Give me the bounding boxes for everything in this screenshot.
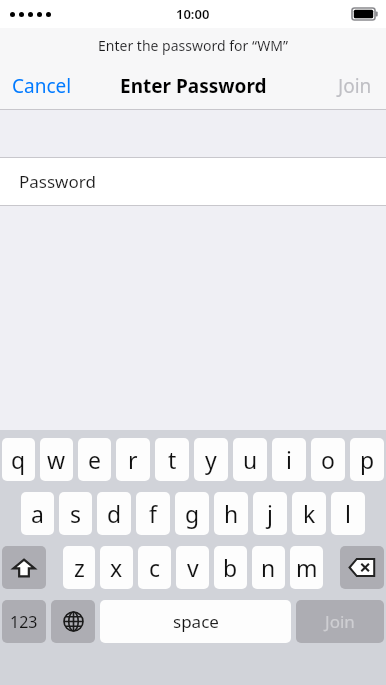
staticText: 10:00 [176, 5, 210, 23]
staticText: u [243, 444, 258, 475]
button[interactable]: g [175, 492, 209, 535]
button[interactable]: j [253, 492, 287, 535]
button[interactable]: space [100, 600, 291, 643]
staticText: z [74, 552, 85, 583]
staticText: w [47, 444, 66, 475]
button[interactable]: d [97, 492, 131, 535]
button[interactable]: q [2, 438, 35, 481]
button[interactable]: i [272, 438, 306, 481]
button[interactable]: t [155, 438, 189, 481]
button[interactable]: k [292, 492, 326, 535]
staticText: Join [338, 73, 372, 99]
staticText: m [296, 552, 318, 583]
button[interactable]: z [63, 546, 95, 589]
button[interactable]: h [214, 492, 248, 535]
staticText: f [149, 498, 157, 529]
staticText: k [303, 498, 316, 529]
staticText: c [149, 552, 161, 583]
button[interactable]: Password [0, 158, 386, 205]
staticText: space [173, 610, 219, 633]
button[interactable]: x [100, 546, 133, 589]
staticText: Password [19, 170, 96, 193]
button[interactable]: w [40, 438, 73, 481]
button[interactable]: e [78, 438, 111, 481]
button[interactable]: n [252, 546, 285, 589]
button[interactable]: u [233, 438, 267, 481]
staticText: s [70, 498, 82, 529]
staticText: q [11, 444, 26, 475]
staticText: 123 [10, 611, 38, 633]
button[interactable]: c [138, 546, 171, 589]
button[interactable]: s [59, 492, 92, 535]
button[interactable]: Join [324, 62, 386, 110]
staticText: i [286, 444, 292, 475]
button[interactable]: l [331, 492, 365, 535]
staticText: t [168, 444, 177, 475]
button[interactable]: Cancel [0, 62, 84, 110]
button[interactable]: y [194, 438, 228, 481]
staticText: o [321, 444, 335, 475]
staticText: Enter Password [120, 73, 267, 99]
staticText: Cancel [12, 73, 72, 99]
button[interactable]: 123 [2, 600, 46, 643]
staticText: n [261, 552, 276, 583]
staticText: y [205, 444, 217, 475]
staticText: h [224, 498, 239, 529]
staticText: l [345, 498, 351, 529]
button[interactable]: f [136, 492, 170, 535]
staticText: Join [325, 610, 355, 633]
staticText: b [223, 552, 238, 583]
button[interactable]: Backspace [340, 546, 384, 589]
button[interactable]: o [311, 438, 345, 481]
staticText: a [31, 498, 44, 529]
staticText: d [107, 498, 122, 529]
button[interactable]: v [176, 546, 209, 589]
button[interactable]: Shift [2, 546, 46, 589]
staticText: p [360, 444, 375, 475]
staticText: e [88, 444, 101, 475]
button[interactable]: r [116, 438, 150, 481]
button[interactable]: Join [296, 600, 384, 643]
button[interactable]: Change keyboard [51, 600, 95, 643]
button[interactable]: p [350, 438, 384, 481]
button[interactable]: b [214, 546, 247, 589]
button[interactable]: a [21, 492, 54, 535]
staticText: g [185, 498, 200, 529]
staticText: j [267, 498, 273, 529]
staticText: x [110, 552, 123, 583]
staticText: v [187, 552, 199, 583]
button[interactable]: m [290, 546, 323, 589]
staticText: Enter the password for “WM” [98, 36, 288, 55]
staticText: r [128, 444, 138, 475]
